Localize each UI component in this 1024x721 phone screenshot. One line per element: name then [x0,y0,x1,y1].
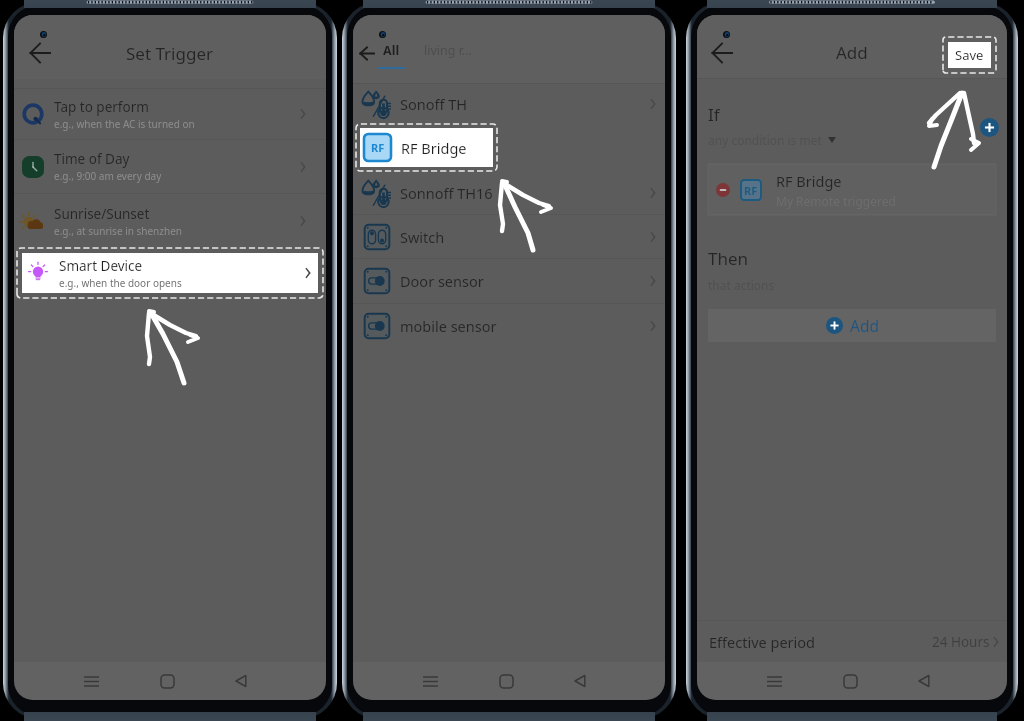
button[interactable]: Smart Device [22,253,318,293]
button[interactable]: Back [904,662,944,700]
button[interactable]: Back [560,662,600,700]
staticText: e.g., when the door opens [59,276,182,290]
button[interactable]: Time of Day [14,140,326,193]
button[interactable]: Switch [353,215,665,258]
staticText: Switch [400,227,650,247]
staticText: Tap to perform [54,98,149,116]
button[interactable]: living r... [419,42,477,59]
staticText: Save [955,46,984,64]
button[interactable]: Back [221,662,261,700]
button[interactable]: Sonnoff TH16 [353,171,665,214]
button[interactable]: Tap to perform [14,89,326,139]
staticText: Sonnoff TH16 [400,183,650,203]
button[interactable]: Sonoff TH [353,84,665,124]
staticText: Effective period [709,632,932,652]
button[interactable]: mobile sensor [353,304,665,348]
staticText: mobile sensor [400,316,650,336]
button[interactable]: Back [703,34,741,72]
staticText: All [383,42,400,59]
staticText: Then [708,247,749,270]
staticText: Door sensor [400,271,650,291]
staticText: 24 Hours [932,633,990,651]
button[interactable]: Sunrise/Sunset [14,194,326,248]
button[interactable]: Add condition [980,118,999,137]
button[interactable]: Home [147,662,187,700]
button[interactable]: Home [830,662,870,700]
button[interactable]: Recents [754,662,794,700]
button[interactable]: All [377,42,406,69]
staticText: RF [744,183,758,198]
button[interactable]: RF [360,128,493,167]
staticText: Smart Device [59,257,143,275]
staticText: RF [371,140,385,155]
staticText: Add [850,315,879,336]
button[interactable]: RF [708,164,996,215]
staticText: e.g., at sunrise in shenzhen [54,224,182,238]
button[interactable]: Back [353,38,382,68]
button[interactable]: Door sensor [353,259,665,303]
button[interactable]: Recents [410,662,450,700]
staticText: living r... [424,42,472,59]
staticText: any condition is met [708,132,822,148]
staticText: that actions [708,277,775,293]
button[interactable]: Add [708,309,996,342]
staticText: Sunrise/Sunset [54,205,150,223]
staticText: RF Bridge [776,171,842,191]
staticText: e.g., when the AC is turned on [54,117,195,131]
staticText: Set Trigger [126,42,214,65]
button[interactable]: Back [20,33,60,73]
staticText: Add [836,41,868,64]
staticText: Sonoff TH [400,94,650,114]
staticText: RF Bridge [401,138,467,158]
staticText: If [708,103,720,126]
staticText: e.g., 9:00 am every day [54,169,162,183]
button[interactable]: Recents [71,662,111,700]
button[interactable]: Effective period [697,621,1007,662]
button[interactable]: Save [948,42,991,68]
button[interactable]: Home [486,662,526,700]
staticText: My Remote triggered [776,193,896,209]
staticText: Time of Day [54,150,130,168]
